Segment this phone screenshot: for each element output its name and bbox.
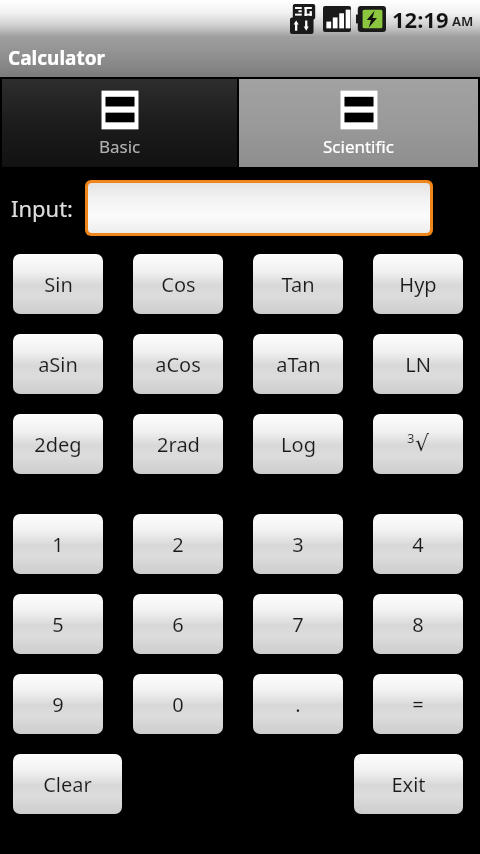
- staticText: 3: [292, 531, 304, 558]
- button[interactable]: 8: [373, 594, 463, 654]
- staticText: Input:: [11, 193, 74, 223]
- button[interactable]: Hyp: [373, 254, 463, 314]
- staticText: 12:19: [392, 4, 449, 34]
- staticText: Sin: [44, 271, 73, 298]
- staticText: Cos: [161, 271, 196, 298]
- button[interactable]: Exit: [354, 754, 463, 814]
- staticText: 2: [172, 531, 184, 558]
- staticText: Clear: [43, 771, 92, 798]
- staticText: =: [412, 691, 424, 718]
- staticText: √: [415, 431, 430, 457]
- staticText: 6: [172, 611, 184, 638]
- button[interactable]: 5: [13, 594, 103, 654]
- staticText: Scientific: [323, 135, 394, 158]
- button[interactable]: 3: [373, 414, 463, 474]
- staticText: Basic: [99, 135, 141, 158]
- staticText: 9: [52, 691, 64, 718]
- button[interactable]: Scientific: [239, 79, 478, 167]
- staticText: .: [295, 691, 301, 718]
- button[interactable]: 4: [373, 514, 463, 574]
- staticText: Tan: [281, 271, 315, 298]
- staticText: aSin: [38, 351, 78, 378]
- staticText: 1: [52, 531, 64, 558]
- staticText: 2deg: [34, 431, 82, 458]
- button[interactable]: 9: [13, 674, 103, 734]
- button[interactable]: aTan: [253, 334, 343, 394]
- button[interactable]: Sin: [13, 254, 103, 314]
- button[interactable]: [88, 183, 430, 233]
- staticText: Hyp: [399, 271, 437, 298]
- staticText: 2rad: [157, 431, 200, 458]
- button[interactable]: 6: [133, 594, 223, 654]
- button[interactable]: 3: [253, 514, 343, 574]
- button[interactable]: Clear: [13, 754, 122, 814]
- button[interactable]: 2: [133, 514, 223, 574]
- staticText: 4: [412, 531, 424, 558]
- staticText: 5: [52, 611, 64, 638]
- button[interactable]: aSin: [13, 334, 103, 394]
- button[interactable]: Tan: [253, 254, 343, 314]
- staticText: Calculator: [8, 45, 106, 71]
- button[interactable]: 2rad: [133, 414, 223, 474]
- staticText: aTan: [276, 351, 321, 378]
- button[interactable]: 1: [13, 514, 103, 574]
- staticText: aCos: [155, 351, 201, 378]
- button[interactable]: 7: [253, 594, 343, 654]
- staticText: Log: [281, 431, 316, 458]
- staticText: 3: [407, 429, 415, 447]
- staticText: 7: [292, 611, 304, 638]
- staticText: LN: [405, 351, 431, 378]
- staticText: 8: [412, 611, 424, 638]
- button[interactable]: 2deg: [13, 414, 103, 474]
- button[interactable]: =: [373, 674, 463, 734]
- button[interactable]: Basic: [2, 79, 237, 167]
- button[interactable]: aCos: [133, 334, 223, 394]
- staticText: 0: [172, 691, 184, 718]
- button[interactable]: Log: [253, 414, 343, 474]
- button[interactable]: LN: [373, 334, 463, 394]
- staticText: AM: [452, 12, 474, 30]
- staticText: Exit: [391, 771, 426, 798]
- button[interactable]: 0: [133, 674, 223, 734]
- button[interactable]: .: [253, 674, 343, 734]
- button[interactable]: Cos: [133, 254, 223, 314]
